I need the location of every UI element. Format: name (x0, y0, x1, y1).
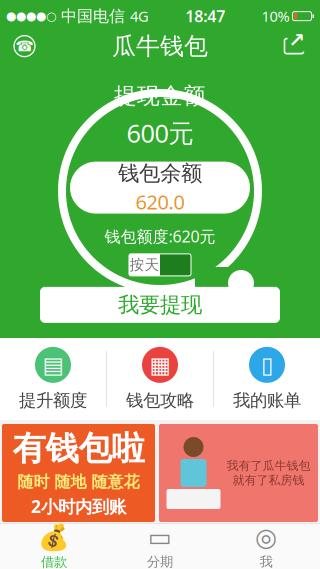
staticText: 中国电信 (61, 6, 125, 26)
staticText: 我有了瓜牛钱包 (226, 458, 310, 473)
staticText: 2小时内到账 (31, 495, 126, 518)
staticText: ▦ (149, 352, 170, 378)
button[interactable]: ▤ (0, 338, 106, 420)
button[interactable]: ▭ (107, 524, 213, 569)
staticText: ●●●●○ (6, 9, 56, 23)
button[interactable]: 瓜牛钱包 私房钱 活动 (159, 424, 318, 522)
staticText: 10% (261, 6, 289, 26)
staticText: ▤ (42, 352, 63, 378)
staticText: 分期 (147, 554, 173, 569)
staticText: 借款 (41, 554, 67, 569)
button[interactable]: 我要提现 (40, 287, 280, 323)
button[interactable]: 有钱包啦 活动 (2, 424, 155, 522)
staticText: 18:47 (185, 5, 225, 27)
staticText: 620.0 (135, 188, 184, 215)
staticText: ↗ (288, 29, 305, 51)
staticText: 钱包余额 (118, 160, 202, 186)
staticText: ☎ (15, 38, 33, 54)
staticText: 钱包攻略 (126, 390, 194, 411)
button[interactable]: 按天 (129, 254, 191, 276)
staticText: 我 (259, 554, 272, 569)
button[interactable]: ▦ (107, 338, 213, 420)
staticText: ▭ (148, 523, 172, 552)
button[interactable]: ▯ (214, 338, 320, 420)
button[interactable]: ◎ (213, 524, 319, 569)
staticText: 💰 (38, 523, 70, 552)
staticText: 提现金额 (114, 82, 206, 110)
button[interactable]: 💰 (1, 524, 107, 569)
staticText: 我的账单 (233, 390, 301, 411)
staticText: ▯ (261, 352, 273, 378)
staticText: 瓜牛钱包 (112, 31, 208, 61)
staticText: 600元 (126, 116, 193, 150)
staticText: 我要提现 (118, 292, 202, 318)
staticText: 随时 随地 随意花 (17, 472, 139, 492)
staticText: 有钱包啦 (12, 428, 144, 469)
staticText: 就有了私房钱 (232, 473, 304, 488)
staticText: 提升额度 (19, 390, 87, 411)
staticText: 按天 (129, 256, 159, 274)
staticText: 钱包额度:620元 (104, 226, 215, 247)
button[interactable]: 客服 (4, 28, 45, 65)
button[interactable]: 分享 (272, 28, 316, 64)
staticText: ◎ (255, 523, 277, 552)
staticText: 4G (130, 6, 149, 26)
